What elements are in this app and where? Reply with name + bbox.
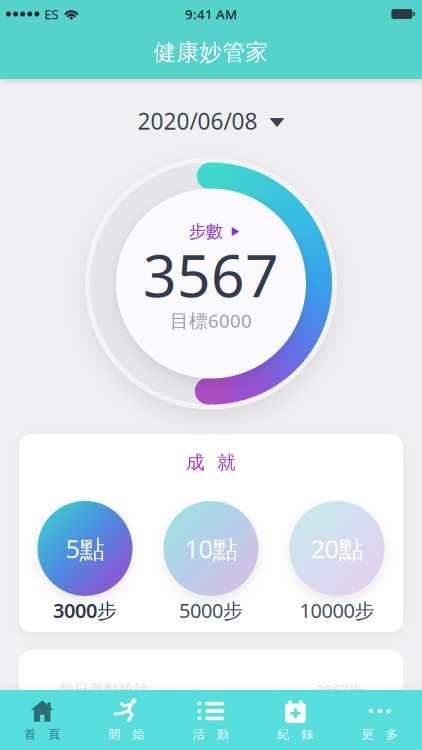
button[interactable]: 首頁 <box>0 690 84 750</box>
staticText: 步數 <box>189 221 223 242</box>
staticText: 10點 <box>184 532 237 565</box>
staticText: 20點 <box>310 532 363 565</box>
staticText: 3567 <box>143 235 279 313</box>
staticText: 活 動 <box>193 727 229 742</box>
staticText: 成 就 <box>186 451 236 474</box>
button[interactable]: 2020/06/08 <box>137 106 284 136</box>
staticText: 5000步 <box>179 597 243 623</box>
staticText: 3567步 <box>316 680 363 699</box>
staticText: 首 頁 <box>24 727 60 742</box>
staticText: 開 始 <box>109 727 145 742</box>
button[interactable]: 開始 <box>84 690 169 750</box>
button[interactable]: 更多 <box>338 690 422 750</box>
staticText: 每日運動統計 <box>59 681 149 699</box>
staticText: 更 多 <box>362 727 398 742</box>
staticText: 健康妙管家 <box>153 39 268 66</box>
button[interactable]: 活動 <box>169 690 253 750</box>
staticText: 3000步 <box>53 597 117 623</box>
button[interactable]: 紀錄 <box>253 690 338 750</box>
button[interactable]: 步數 <box>189 221 239 242</box>
staticText: 2020/06/08 <box>137 106 257 136</box>
staticText: 9:41 AM <box>185 5 237 23</box>
staticText: 10000步 <box>299 597 374 623</box>
staticText: 紀 錄 <box>277 727 313 742</box>
staticText: ES <box>44 5 58 23</box>
staticText: 目標6000 <box>170 308 252 333</box>
staticText: 5點 <box>65 532 104 565</box>
